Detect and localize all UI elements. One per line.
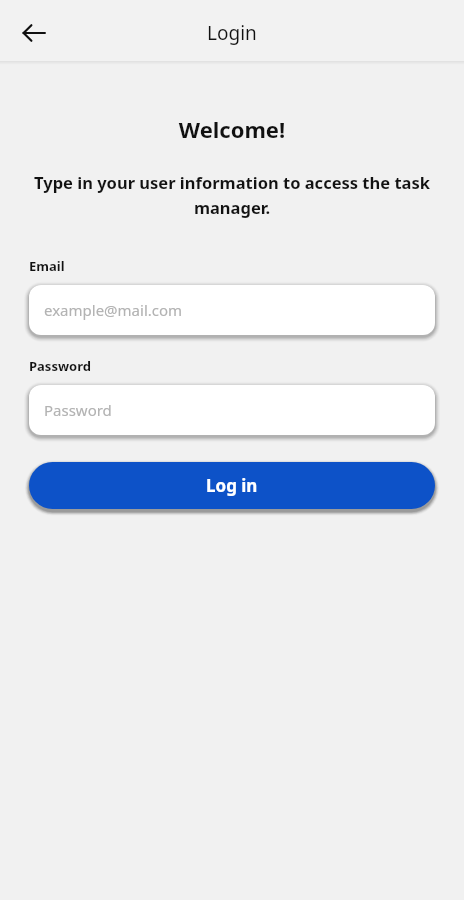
button[interactable]: Log in	[29, 462, 435, 509]
staticText: Login	[207, 20, 257, 46]
staticText: example@mail.com	[44, 300, 183, 320]
staticText: Welcome!	[29, 114, 435, 144]
staticText: Type in your user information to access …	[29, 171, 435, 219]
staticText: Password	[44, 400, 112, 420]
staticText: Email	[29, 257, 65, 275]
button[interactable]: Back	[12, 11, 56, 55]
staticText: Log in	[206, 474, 258, 497]
button[interactable]: Password input	[29, 385, 435, 435]
button[interactable]: Email input	[29, 285, 435, 335]
staticText: Password	[29, 357, 91, 375]
